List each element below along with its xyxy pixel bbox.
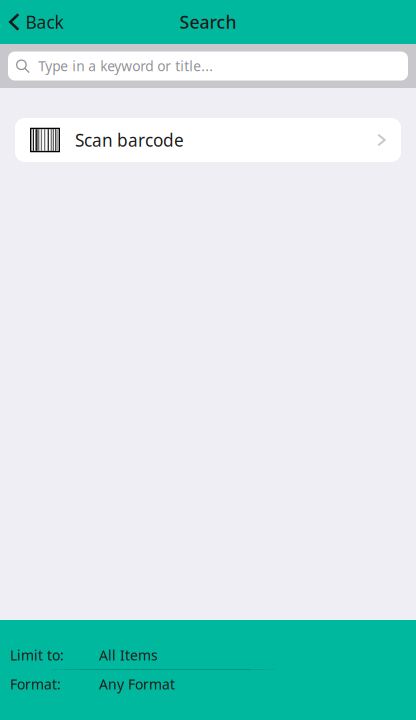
staticText: Format: [10,674,61,694]
button[interactable]: Scan barcode [0,118,416,162]
staticText: All Items [99,645,158,665]
staticText: Any Format [99,674,175,694]
button[interactable]: Limit to: [0,641,416,669]
staticText: Type in a keyword or title... [38,57,213,75]
staticText: Back [26,10,64,34]
staticText: Scan barcode [75,128,184,152]
button[interactable]: Format: [0,670,416,698]
staticText: Limit to: [10,645,64,665]
button[interactable]: Type in a keyword or title... [0,51,416,80]
button[interactable]: Back [0,0,74,44]
staticText: Search [179,10,236,34]
